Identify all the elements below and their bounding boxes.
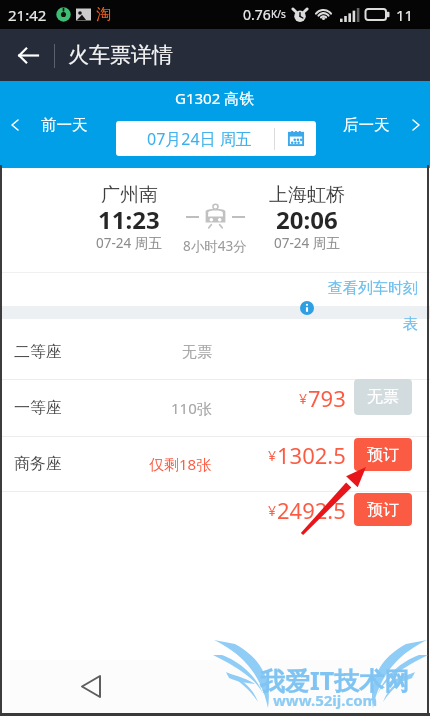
staticText: 2492.5: [277, 495, 346, 525]
staticText: 无票: [182, 343, 212, 362]
staticText: ¥: [268, 446, 277, 465]
staticText: 仅剩18张: [149, 454, 212, 474]
button[interactable]: Previous day: [4, 109, 26, 141]
staticText: 查看列车时刻: [328, 279, 418, 298]
staticText: 上海虹桥: [269, 183, 345, 207]
staticText: 淘: [96, 5, 111, 24]
staticText: K/s: [271, 7, 286, 21]
button[interactable]: 一等座: [0, 379, 430, 436]
staticText: 07-24 周五: [96, 234, 162, 252]
button[interactable]: ¥: [0, 491, 430, 546]
staticText: 广州南: [101, 183, 158, 207]
staticText: 我爱IT技术网: [260, 663, 410, 697]
button[interactable]: 商务座: [0, 436, 430, 491]
staticText: 无票: [367, 387, 399, 407]
staticText: 20:06: [276, 203, 338, 236]
staticText: 11: [396, 5, 414, 25]
button[interactable]: Info: [300, 301, 314, 315]
button[interactable]: Back: [6, 29, 50, 81]
button[interactable]: 无票: [354, 379, 412, 415]
staticText: 8小时43分: [183, 237, 247, 255]
staticText: 07月24日 周五: [147, 128, 252, 150]
staticText: 21:42: [8, 5, 47, 25]
staticText: 商务座: [14, 454, 62, 474]
staticText: 预订: [367, 445, 399, 465]
staticText: 火车票详情: [68, 42, 173, 68]
staticText: G1302 高铁: [175, 88, 255, 108]
staticText: 110张: [171, 398, 212, 418]
staticText: 一等座: [14, 398, 62, 418]
button[interactable]: Back: [68, 660, 114, 713]
staticText: 前一天: [41, 115, 88, 135]
button[interactable]: 预订: [354, 438, 412, 471]
staticText: 0.76: [243, 5, 271, 24]
staticText: 后一天: [343, 115, 390, 135]
staticText: 预订: [367, 500, 399, 520]
button[interactable]: 二等座: [0, 319, 430, 379]
staticText: 07-24 周五: [274, 234, 340, 252]
staticText: 二等座: [14, 342, 62, 362]
staticText: 1302.5: [277, 440, 346, 470]
button[interactable]: 预订: [354, 493, 412, 526]
button[interactable]: 后一天: [338, 109, 394, 141]
staticText: www.52ij.com: [273, 690, 378, 710]
staticText: 表: [403, 315, 418, 334]
staticText: 793: [308, 383, 346, 413]
staticText: 11:23: [98, 203, 160, 236]
staticText: ¥: [299, 389, 308, 408]
button[interactable]: 07月24日 周五: [116, 121, 316, 156]
button[interactable]: Next day: [405, 109, 427, 141]
button[interactable]: 查看列车时刻: [240, 279, 418, 335]
staticText: ¥: [268, 501, 277, 520]
button[interactable]: 前一天: [36, 109, 92, 141]
